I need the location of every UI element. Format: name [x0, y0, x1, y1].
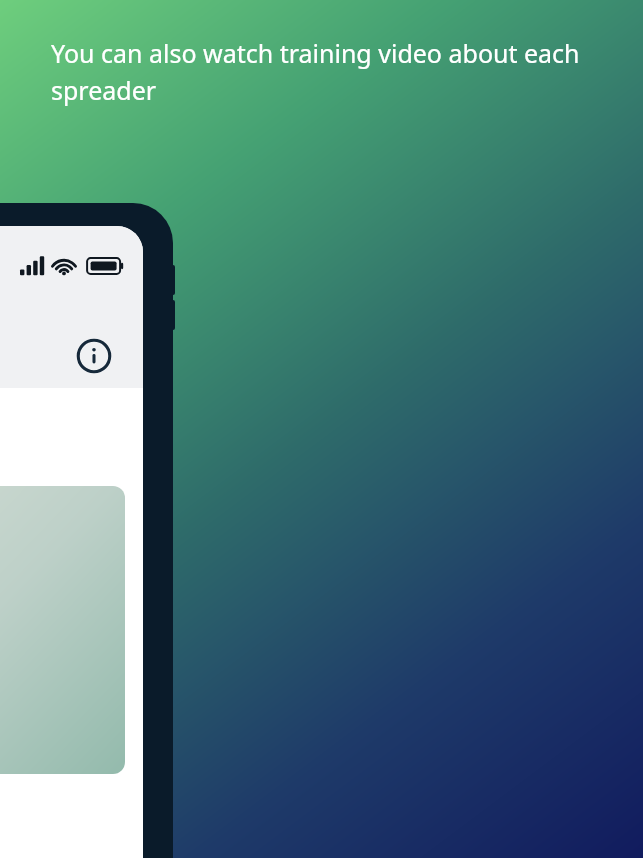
button[interactable]: [0, 486, 125, 774]
staticText: You can also watch training video about …: [51, 36, 596, 107]
button[interactable]: Information: [70, 332, 118, 380]
